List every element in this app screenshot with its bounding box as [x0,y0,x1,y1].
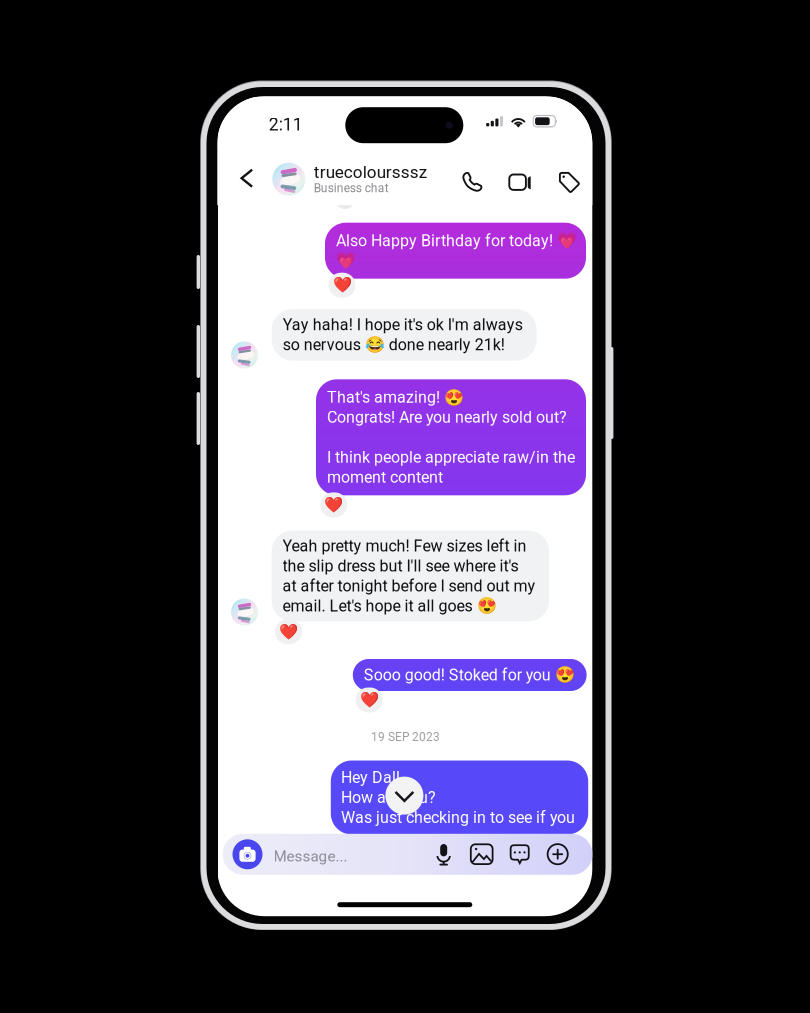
staticText: truecoloursssz [314,162,427,182]
staticText: ❤️ [332,276,351,294]
staticText: ❤️ [279,623,298,641]
button[interactable]: Products [556,168,582,196]
staticText: 2:11 [269,114,303,135]
staticText: That's amazing! 😍 [327,388,464,407]
staticText: ❤️ [324,496,343,514]
button[interactable]: More [547,841,569,867]
staticText: the slip dress but I'll see where it's [283,557,519,575]
button[interactable]: truecoloursssz [272,160,442,198]
staticText: at after tonight before I send out my [283,577,536,595]
staticText: Yay haha! I hope it's ok I'm always [283,315,523,334]
staticText: email. Let's hope it all goes 😍 [283,597,497,615]
button[interactable]: Stickers [509,841,531,867]
staticText: Was just checking in to see if you [341,808,575,827]
staticText: Yeah pretty much! Few sizes left in [283,537,527,555]
staticText: How are you? [341,788,436,807]
staticText: moment content [327,468,443,487]
staticText: so nervous 😂 done nearly 21k! [283,335,505,354]
button[interactable]: Audio call [459,168,485,196]
staticText: 19 SEP 2023 [371,730,440,744]
button[interactable]: Scroll to latest [385,777,423,815]
button[interactable]: Video call [508,168,534,196]
staticText: ❤️ [360,691,379,709]
button[interactable]: Back [229,157,265,199]
staticText: Also Happy Birthday for today! 💗 [336,231,577,250]
button[interactable]: Photos [471,841,493,867]
button[interactable]: Voice message [433,841,455,867]
staticText: 💗 [336,251,356,270]
staticText: Business chat [314,181,389,195]
staticText: Hey Dall [341,768,400,787]
staticText: Sooo good! Stoked for you 😍 [364,666,575,684]
button[interactable]: Camera [228,834,266,875]
staticText: Message... [273,847,347,865]
staticText: I think people appreciate raw/in the [327,448,575,467]
staticText: Congrats! Are you nearly sold out? [327,408,567,427]
